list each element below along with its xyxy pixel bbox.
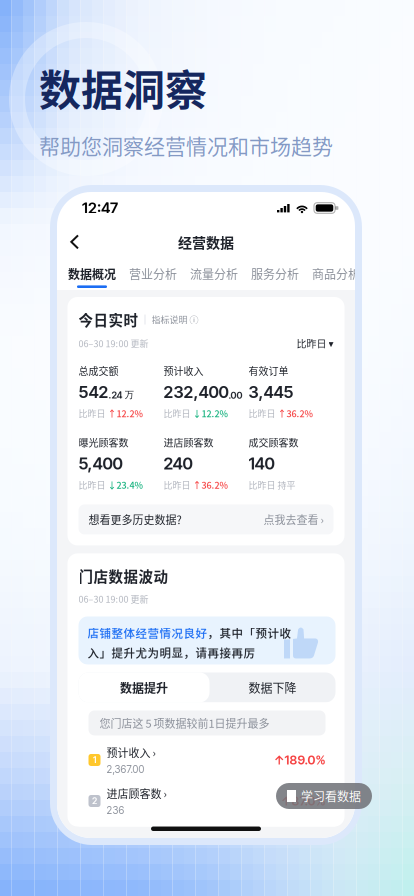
staticText: 进店顾客数 › <box>106 785 166 801</box>
staticText: 比昨日 <box>78 478 105 491</box>
staticText: 12:47 <box>82 199 118 217</box>
staticText: 比昨日 持平 <box>248 478 295 491</box>
staticText: 进店顾客数 <box>163 435 213 449</box>
staticText: 140 <box>248 453 274 473</box>
staticText: 成交顾客数 <box>248 435 298 449</box>
staticText: 数据概况 <box>68 265 116 282</box>
button[interactable]: 数据提升 <box>78 672 209 702</box>
staticText: ↑87.0% <box>280 793 325 808</box>
staticText: 比昨日 <box>78 407 105 420</box>
staticText: 240 <box>163 453 192 473</box>
staticText: 5,400 <box>78 453 122 473</box>
staticText: 预计收入 <box>163 363 203 378</box>
button[interactable]: 流量分析 <box>190 262 238 288</box>
staticText: ↓23.4% <box>107 478 142 491</box>
staticText: 数据提升 <box>120 679 168 696</box>
staticText: 有效订单 <box>248 363 288 378</box>
staticText: 服务分析 <box>251 265 299 282</box>
staticText: 比昨日 <box>163 407 190 420</box>
button[interactable]: 返回 <box>57 225 92 258</box>
staticText: 营业分析 <box>129 265 177 282</box>
staticText: 店铺整体经营情况良好 <box>87 624 207 641</box>
staticText: 比昨日 ▾ <box>296 336 333 350</box>
staticText: 学习看数据 <box>301 787 361 805</box>
staticText: 预计收入 › <box>106 744 155 760</box>
staticText: 入」提升尤为明显，请再接再厉 <box>87 644 255 661</box>
button[interactable]: 数据概况 <box>68 262 116 288</box>
staticText: ↑36.2% <box>192 478 227 491</box>
staticText: 2,367.00 <box>106 763 144 775</box>
staticText: 曝光顾客数 <box>78 435 128 449</box>
staticText: 今日实时 <box>78 309 138 330</box>
button[interactable]: 数据下降 <box>209 672 335 702</box>
button[interactable]: 想看更多历史数据? <box>78 504 333 534</box>
staticText: .00 <box>228 389 242 401</box>
staticText: ↑189.0% <box>273 752 325 767</box>
staticText: 3,445 <box>248 382 293 402</box>
staticText: 542 <box>78 382 108 402</box>
button[interactable]: 服务分析 <box>251 262 299 288</box>
button[interactable]: 1 <box>78 744 335 775</box>
staticText: 帮助您洞察经营情况和市场趋势 <box>39 130 333 160</box>
staticText: 您门店这 5 项数据较前1日提升最多 <box>99 715 269 731</box>
staticText: 流量分析 <box>190 265 238 282</box>
staticText: 比昨日 <box>163 478 190 491</box>
staticText: 236 <box>106 804 124 816</box>
staticText: 06–30 19:00 更新 <box>78 592 148 605</box>
staticText: 经营数据 <box>178 232 234 252</box>
staticText: ，其中「预计收 <box>207 624 291 641</box>
staticText: 232,400 <box>163 382 228 402</box>
staticText: 2 <box>92 796 97 806</box>
button[interactable]: 比昨日 ▾ <box>296 336 333 350</box>
button[interactable]: 商品分析 <box>312 262 360 288</box>
button[interactable]: 营业分析 <box>129 262 177 288</box>
staticText: 1 <box>93 754 96 765</box>
staticText: 06–30 19:00 更新 <box>78 337 148 350</box>
staticText: 总成交额 <box>78 363 118 378</box>
staticText: ↑12.2% <box>107 407 142 420</box>
staticText: 点我去查看 › <box>263 511 323 527</box>
staticText: 门店数据波动 <box>78 565 168 586</box>
staticText: 数据下降 <box>248 679 296 696</box>
staticText: .24 万 <box>108 389 134 401</box>
staticText: ↑36.2% <box>277 407 312 420</box>
button[interactable]: 学习看数据 <box>276 783 372 809</box>
button[interactable]: 2 <box>78 785 335 816</box>
staticText: 数据洞察 <box>39 57 207 118</box>
staticText: 商品分析 <box>312 265 360 282</box>
staticText: 指标说明 ⓘ <box>151 313 198 326</box>
staticText: 比昨日 <box>248 407 275 420</box>
staticText: 想看更多历史数据? <box>88 511 181 527</box>
staticText: ↓12.2% <box>192 407 227 420</box>
